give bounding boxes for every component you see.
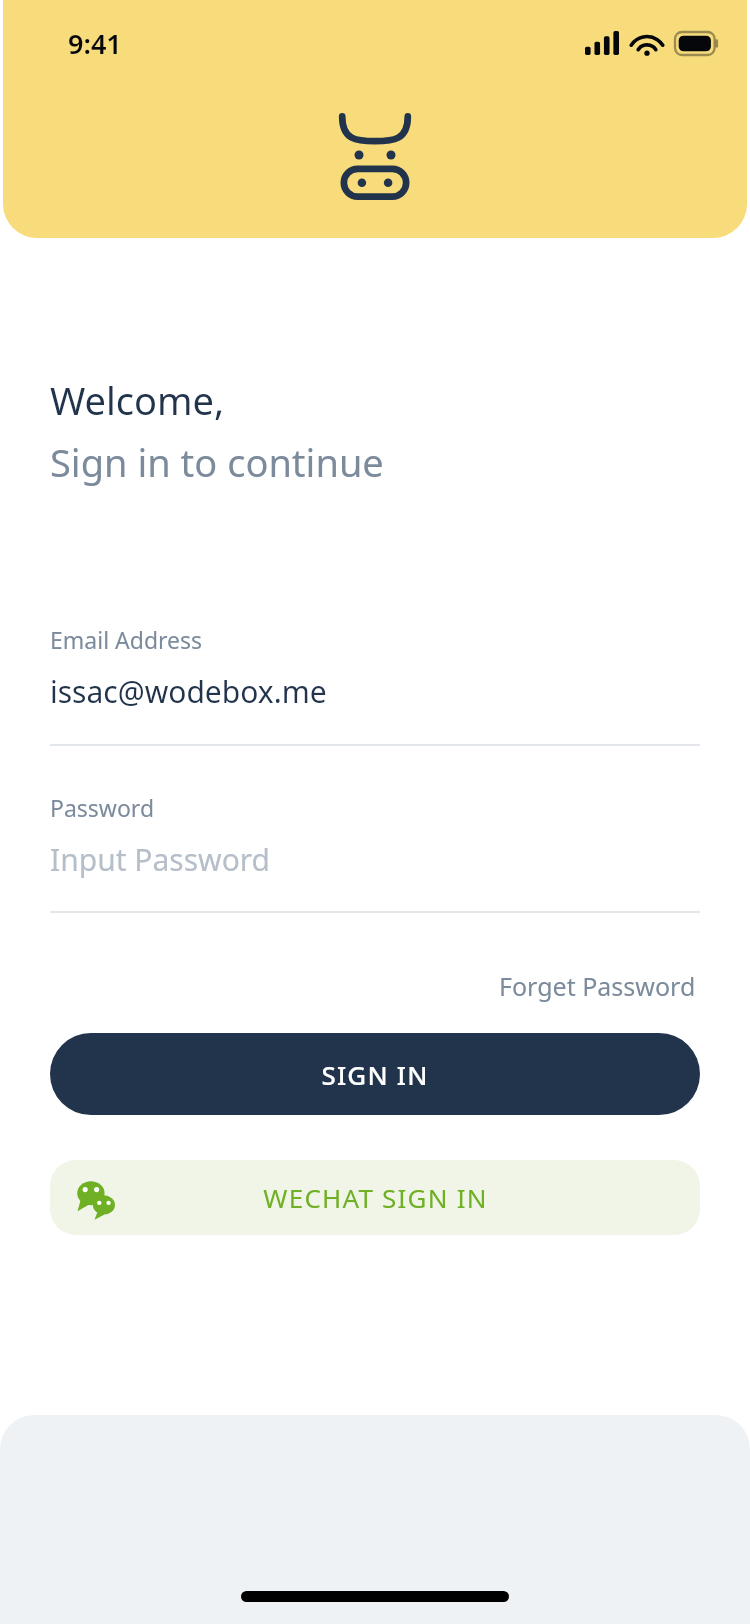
button[interactable]: WeChat [50, 1160, 700, 1235]
other: Wi-Fi [631, 32, 663, 55]
staticText: Input Password [50, 839, 271, 880]
staticText: SIGN IN [321, 1057, 429, 1092]
staticText: issac@wodebox.me [50, 671, 327, 712]
staticText: Welcome, [50, 374, 225, 426]
staticText: Password [50, 792, 155, 823]
button[interactable]: Input Password [50, 839, 700, 880]
other: Battery [675, 32, 719, 55]
other: WeChat [76, 1177, 118, 1219]
staticText: 9:41 [68, 25, 122, 62]
staticText: Email Address [50, 624, 203, 655]
staticText: WECHAT SIGN IN [263, 1180, 488, 1215]
other: App logo [334, 116, 416, 200]
button[interactable]: issac@wodebox.me [50, 671, 700, 712]
other: Cellular signal [585, 31, 619, 55]
staticText: Sign in to continue [50, 436, 384, 488]
button[interactable]: Forget Password [495, 965, 700, 1007]
button[interactable]: SIGN IN [50, 1033, 700, 1115]
staticText: Forget Password [499, 969, 696, 1003]
